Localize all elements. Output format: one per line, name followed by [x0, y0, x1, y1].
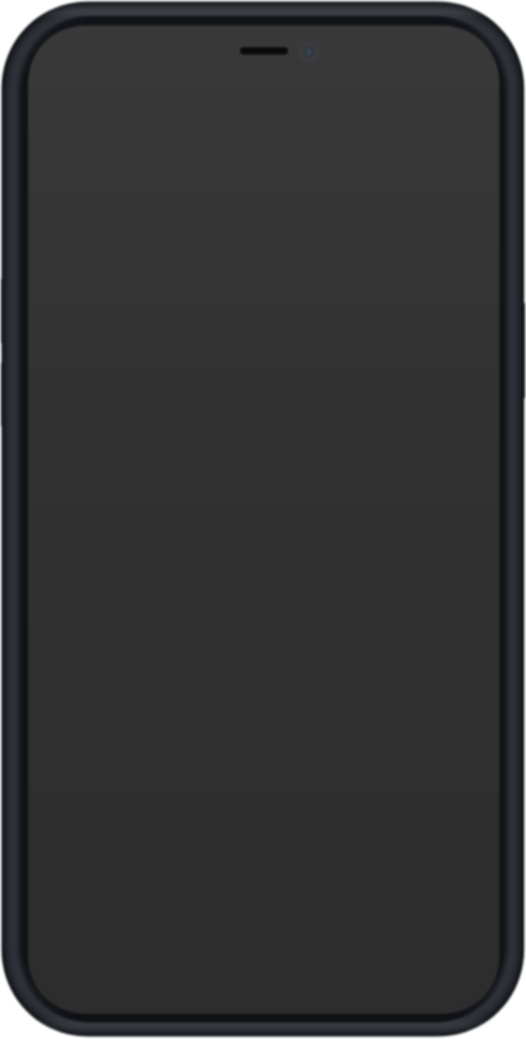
button[interactable]: Power [514, 302, 526, 399]
button[interactable]: Volume up [0, 278, 12, 344]
button[interactable]: Volume down [0, 362, 12, 427]
button[interactable]: Display [28, 25, 499, 1014]
